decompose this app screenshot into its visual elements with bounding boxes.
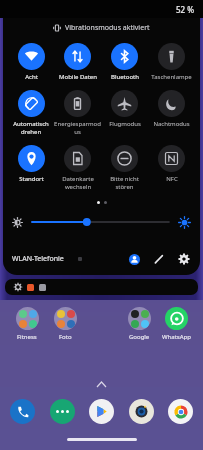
button[interactable]: Datenkarte wechseln: [54, 144, 101, 192]
button[interactable]: Flugmodus: [101, 89, 148, 129]
button[interactable]: Settings: [177, 252, 191, 266]
button[interactable]: Automatisch drehen: [8, 89, 54, 137]
staticText: Vibrationsmodus aktiviert: [65, 23, 150, 33]
button[interactable]: Messages: [50, 399, 75, 424]
staticText: WhatsApp: [162, 333, 191, 341]
staticText: Bitte nicht stören: [101, 175, 148, 191]
button[interactable]: Fitness: [8, 307, 46, 341]
button[interactable]: Foto: [46, 307, 84, 341]
button[interactable]: Chrome: [168, 399, 193, 424]
button[interactable]: Mobile Daten: [54, 42, 101, 82]
staticText: Acht: [25, 73, 38, 81]
button[interactable]: Auto brightness: [178, 216, 191, 229]
staticText: Flugmodus: [109, 120, 141, 128]
button[interactable]: [5, 279, 198, 295]
button[interactable]: NFC: [148, 144, 195, 184]
button[interactable]: Bitte nicht stören: [101, 144, 148, 192]
staticText: Fitness: [17, 333, 37, 341]
button[interactable]: Play Store: [89, 399, 114, 424]
staticText: Datenkarte wechseln: [62, 175, 94, 191]
button[interactable]: User: [127, 252, 141, 266]
button[interactable]: Standort: [8, 144, 54, 184]
staticText: Bluetooth: [111, 73, 139, 81]
button[interactable]: Bluetooth: [101, 42, 148, 82]
button[interactable]: Energiesparmod us: [54, 89, 101, 137]
staticText: Google: [129, 333, 150, 341]
button[interactable]: Taschenlampe: [148, 42, 195, 82]
button[interactable]: Acht: [8, 42, 54, 82]
button[interactable]: [32, 216, 169, 228]
button[interactable]: Phone: [10, 399, 35, 424]
button[interactable]: Camera: [129, 399, 154, 424]
staticText: Taschenlampe: [151, 73, 192, 81]
staticText: Mobile Daten: [59, 73, 97, 81]
button[interactable]: Edit: [152, 252, 166, 266]
button[interactable]: WLAN-Telefonie: [12, 254, 64, 264]
staticText: Standort: [19, 175, 44, 183]
staticText: Nachtmodus: [153, 120, 190, 128]
staticText: Energiesparmod us: [54, 120, 101, 136]
staticText: NFC: [166, 175, 178, 183]
button[interactable]: Google: [121, 307, 158, 341]
button[interactable]: WhatsApp: [158, 307, 195, 341]
staticText: Automatisch drehen: [13, 120, 49, 136]
staticText: Foto: [59, 333, 72, 341]
button[interactable]: Nachtmodus: [148, 89, 195, 129]
staticText: 52 %: [176, 4, 195, 15]
